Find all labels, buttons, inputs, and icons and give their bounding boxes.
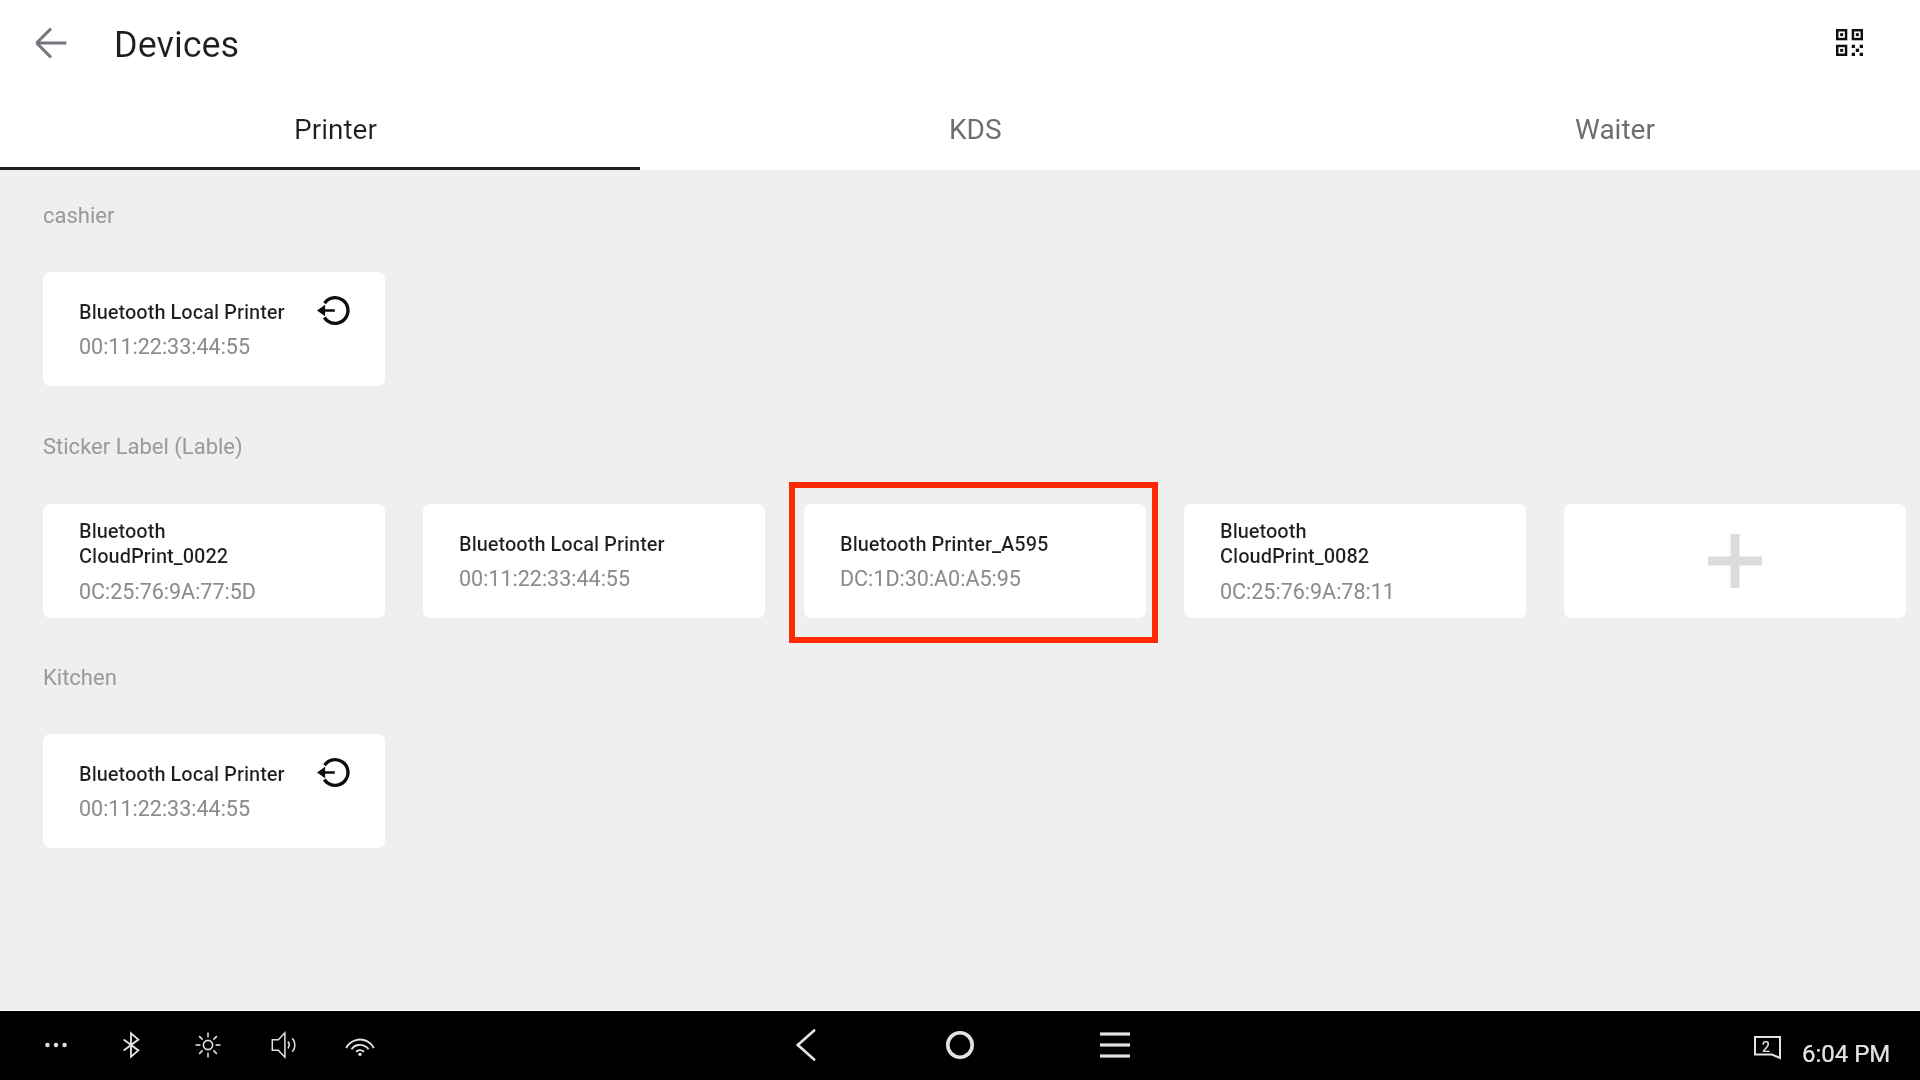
button[interactable]: More options xyxy=(30,1011,82,1080)
button[interactable]: Back xyxy=(20,12,82,74)
button[interactable]: Bluetooth Local Printer xyxy=(43,734,385,848)
button[interactable]: Add device xyxy=(1564,504,1906,618)
staticText: 00:11:22:33:44:55 xyxy=(79,796,251,821)
staticText: 6:04 PM xyxy=(1802,1040,1891,1068)
staticText: Kitchen xyxy=(43,665,117,691)
button[interactable]: Bluetooth Local Printer xyxy=(43,272,385,386)
staticText: Devices xyxy=(114,24,240,66)
button[interactable]: Wi-Fi xyxy=(334,1011,386,1080)
staticText: 00:11:22:33:44:55 xyxy=(459,566,631,591)
staticText: cashier xyxy=(43,203,115,229)
button[interactable]: Recent apps xyxy=(1088,1011,1142,1080)
button[interactable]: Bluetooth CloudPrint_0022 xyxy=(43,504,385,618)
staticText: Waiter xyxy=(1575,113,1655,146)
staticText: 0C:25:76:9A:78:11 xyxy=(1220,579,1395,604)
staticText: 00:11:22:33:44:55 xyxy=(79,334,251,359)
button[interactable]: Bluetooth Local Printer xyxy=(423,504,765,618)
button[interactable]: Printer xyxy=(0,113,640,146)
button[interactable]: Home xyxy=(933,1011,987,1080)
button[interactable]: Brightness xyxy=(182,1011,234,1080)
staticText: Bluetooth CloudPrint_0022 xyxy=(79,519,229,568)
staticText: KDS xyxy=(949,113,1002,146)
staticText: Bluetooth Local Printer xyxy=(79,300,285,323)
staticText: Bluetooth Local Printer xyxy=(459,532,665,555)
staticText: DC:1D:30:A0:A5:95 xyxy=(840,566,1021,591)
staticText: Printer xyxy=(294,113,377,146)
staticText: Sticker Label (Lable) xyxy=(43,434,243,460)
button[interactable]: Waiter xyxy=(1280,113,1920,146)
staticText: Bluetooth CloudPrint_0082 xyxy=(1220,519,1370,568)
button[interactable]: KDS xyxy=(640,113,1280,146)
button[interactable]: Bluetooth Printer_A595 xyxy=(804,504,1146,618)
button[interactable]: Notifications xyxy=(1747,1029,1787,1062)
staticText: Bluetooth Printer_A595 xyxy=(840,532,1049,555)
staticText: 0C:25:76:9A:77:5D xyxy=(79,579,256,604)
button[interactable]: Disconnect device xyxy=(308,749,357,798)
button[interactable]: Disconnect device xyxy=(308,287,357,336)
button[interactable]: Scan QR code xyxy=(1821,14,1877,70)
staticText: Bluetooth Local Printer xyxy=(79,762,285,785)
staticText: 2 xyxy=(1762,1039,1770,1055)
button[interactable]: Bluetooth xyxy=(105,1011,157,1080)
button[interactable]: Back xyxy=(779,1011,833,1080)
button[interactable]: Bluetooth CloudPrint_0082 xyxy=(1184,504,1526,618)
button[interactable]: Volume xyxy=(258,1011,310,1080)
